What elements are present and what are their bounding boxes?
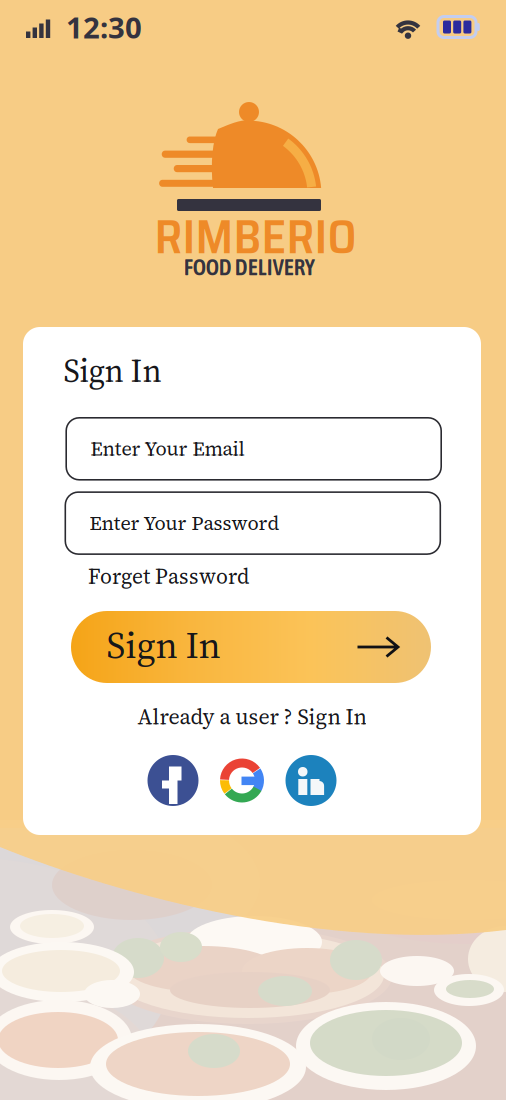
button[interactable]: Sign In	[71, 611, 431, 683]
staticText: Enter Your Password	[90, 510, 280, 536]
staticText: Sign In	[63, 348, 161, 392]
staticText: Already a user ? Sign In	[137, 702, 366, 731]
button[interactable]: Already a user ? Sign In	[129, 697, 374, 736]
button[interactable]: Sign in with LinkedIn	[285, 755, 336, 806]
button[interactable]: Sign in with Facebook	[147, 755, 198, 806]
staticText: Forget Password	[88, 562, 250, 591]
staticText: RIMBERIO	[154, 199, 356, 274]
button[interactable]: Forget Password	[82, 557, 256, 596]
button[interactable]: Enter Your Email	[66, 418, 441, 480]
staticText: FOOD DELIVERY	[184, 254, 315, 280]
staticText: Enter Your Email	[90, 435, 244, 462]
button[interactable]: Enter Your Password	[65, 492, 440, 554]
staticText: Sign In	[107, 619, 221, 670]
staticText: 12:30	[66, 7, 142, 46]
button[interactable]: Sign in with Google	[216, 755, 267, 806]
